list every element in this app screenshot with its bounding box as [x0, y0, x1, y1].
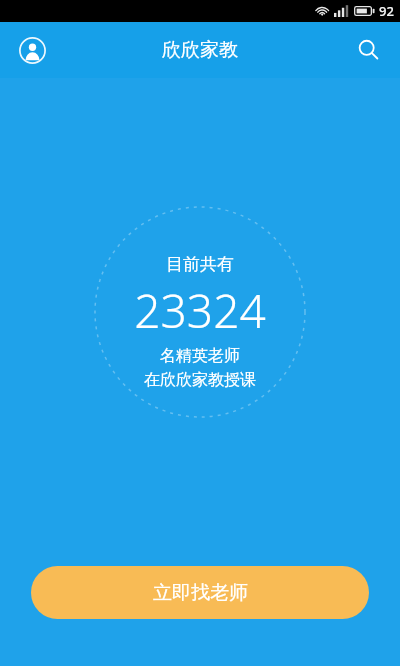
- staticText: 名精英老师: [160, 346, 240, 366]
- staticText: 立即找老师: [153, 581, 248, 605]
- staticText: 92: [379, 2, 394, 20]
- staticText: 欣欣家教: [162, 38, 238, 62]
- staticText: 23324: [134, 279, 266, 342]
- button[interactable]: Profile: [12, 30, 52, 70]
- staticText: 目前共有: [166, 254, 234, 275]
- staticText: 在欣欣家教授课: [144, 370, 256, 390]
- button[interactable]: 立即找老师: [31, 566, 369, 619]
- button[interactable]: Search: [348, 30, 388, 70]
